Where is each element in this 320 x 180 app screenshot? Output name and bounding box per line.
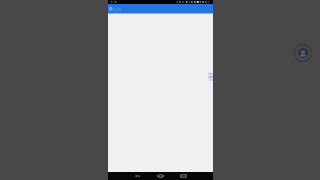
button[interactable]: Home: [156, 172, 165, 180]
button[interactable]: Recents: [179, 172, 188, 180]
button[interactable]: Back: [133, 172, 142, 180]
button[interactable]: Wi-Fi: [108, 4, 213, 14]
staticText: Wi-Fi: [112, 7, 122, 12]
button[interactable]: Scroll: [208, 72, 213, 81]
